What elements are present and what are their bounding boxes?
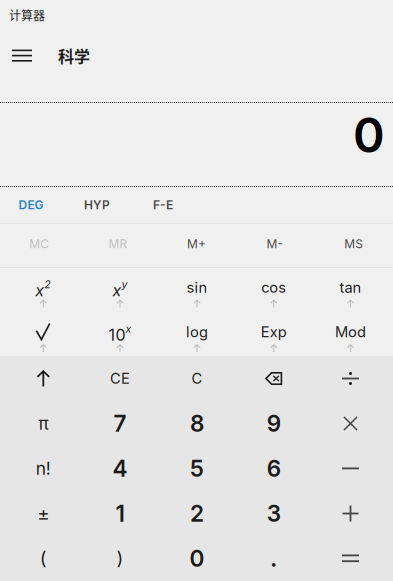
button[interactable]: Operator — [312, 491, 389, 536]
staticText: ↑ — [269, 341, 278, 354]
staticText: 科学 — [58, 44, 90, 67]
button[interactable]: MC — [0, 223, 79, 265]
staticText: F-E — [153, 198, 173, 212]
staticText: HYP — [84, 198, 110, 212]
staticText: 10 — [109, 325, 126, 345]
staticText: x — [35, 281, 44, 300]
button[interactable]: ( — [5, 536, 82, 581]
button[interactable]: sine — [158, 267, 235, 311]
button[interactable]: C — [158, 356, 235, 401]
staticText: Exp — [261, 323, 287, 341]
staticText: π — [38, 413, 48, 434]
staticText: CE — [110, 370, 130, 387]
staticText: Mod — [335, 323, 366, 341]
staticText: 4 — [113, 455, 128, 482]
button[interactable]: cosine — [235, 267, 312, 311]
button[interactable]: HYP — [67, 188, 127, 222]
button[interactable]: x to the power y — [82, 267, 158, 311]
staticText: ↑ — [116, 297, 125, 310]
button[interactable]: log — [158, 311, 235, 355]
button[interactable]: ± — [5, 491, 82, 536]
button[interactable]: tangent — [312, 267, 389, 311]
button[interactable]: MR — [79, 223, 157, 265]
staticText: 3 — [267, 500, 281, 527]
staticText: ↑ — [192, 341, 201, 354]
button[interactable]: DEG — [1, 188, 61, 222]
staticText: 1 — [116, 500, 125, 527]
staticText: MC — [29, 237, 49, 251]
staticText: 计算器 — [9, 6, 45, 24]
button[interactable]: 7 — [82, 401, 158, 446]
staticText: DEG — [18, 198, 43, 212]
button[interactable]: CE — [82, 356, 158, 401]
button[interactable]: 8 — [158, 401, 235, 446]
button[interactable]: 6 — [235, 446, 312, 491]
staticText: 7 — [114, 410, 127, 437]
staticText: 5 — [190, 455, 204, 482]
button[interactable]: π — [5, 401, 82, 446]
button[interactable]: MS — [314, 223, 393, 265]
button[interactable]: Backspace — [235, 356, 312, 401]
staticText: ↑ — [346, 341, 355, 354]
staticText: 2 — [190, 500, 204, 527]
staticText: C — [191, 370, 202, 387]
button[interactable]: Navigation menu — [0, 33, 44, 77]
staticText: ↑ — [346, 297, 355, 310]
button[interactable]: Shift — [5, 356, 82, 401]
staticText: log — [186, 323, 208, 341]
staticText: ) — [117, 547, 124, 570]
staticText: MR — [108, 237, 127, 251]
staticText: M+ — [187, 237, 206, 251]
button[interactable]: 4 — [82, 446, 158, 491]
button[interactable]: exponent — [235, 311, 312, 355]
staticText: ( — [40, 547, 47, 570]
button[interactable]: M- — [236, 223, 314, 265]
staticText: sin — [186, 279, 207, 296]
staticText: . — [270, 545, 277, 572]
staticText: M- — [267, 237, 284, 251]
staticText: tan — [339, 279, 361, 296]
staticText: n! — [36, 458, 51, 479]
button[interactable]: 5 — [158, 446, 235, 491]
button[interactable]: 科学 — [58, 35, 118, 75]
staticText: ↑ — [192, 297, 201, 310]
button[interactable]: M+ — [157, 223, 236, 265]
button[interactable]: 3 — [235, 491, 312, 536]
button[interactable]: Operator — [312, 446, 389, 491]
button[interactable]: 9 — [235, 401, 312, 446]
staticText: 0 — [189, 545, 204, 572]
button[interactable]: modulo — [312, 311, 389, 355]
button[interactable]: x squared — [5, 267, 82, 311]
staticText: ± — [37, 502, 49, 525]
staticText: x — [113, 281, 122, 300]
staticText: y — [122, 278, 128, 291]
button[interactable]: Operator — [312, 401, 389, 446]
button[interactable]: 0 — [158, 536, 235, 581]
staticText: MS — [344, 237, 363, 251]
staticText: 2 — [44, 278, 51, 291]
button[interactable]: . — [235, 536, 312, 581]
button[interactable]: F-E — [133, 188, 193, 222]
button[interactable]: Divide — [312, 356, 389, 401]
button[interactable]: ten to the power x — [82, 311, 158, 355]
button[interactable]: ) — [82, 536, 158, 581]
button[interactable]: 2 — [158, 491, 235, 536]
staticText: 0 — [353, 106, 385, 164]
staticText: ↑ — [39, 297, 48, 310]
staticText: 9 — [267, 410, 281, 437]
staticText: x — [126, 322, 132, 335]
button[interactable]: n! — [5, 446, 82, 491]
button[interactable]: Operator — [312, 536, 389, 581]
staticText: cos — [261, 279, 286, 296]
button[interactable]: square root — [5, 311, 82, 355]
button[interactable]: 1 — [82, 491, 158, 536]
staticText: ↑ — [269, 297, 278, 310]
staticText: 6 — [267, 455, 281, 482]
staticText: ↑ — [39, 341, 48, 354]
staticText: ↑ — [116, 341, 125, 354]
staticText: 8 — [190, 410, 204, 437]
